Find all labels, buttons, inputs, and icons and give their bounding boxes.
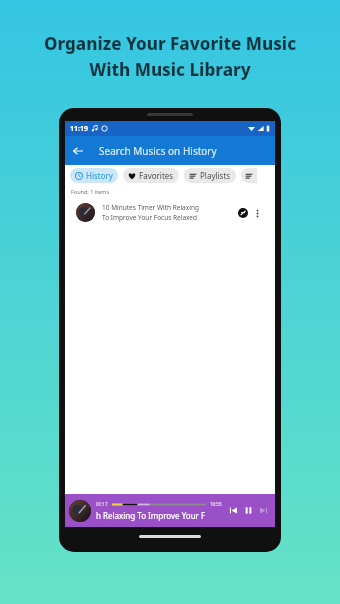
staticText: 11:19 (70, 124, 88, 134)
button[interactable]: More filters (241, 168, 257, 183)
staticText: Found: 1 items (71, 188, 110, 195)
staticText: Favorites (139, 170, 174, 181)
button[interactable]: Favorites (123, 168, 179, 183)
button[interactable]: Downloaded (236, 206, 250, 220)
button[interactable]: History (70, 168, 118, 183)
staticText: 10:55 (210, 501, 222, 507)
staticText: Organize Your Favorite Music (0, 32, 340, 55)
button[interactable]: Previous (226, 503, 241, 518)
staticText: 10 Minutes Timer With Relaxing (102, 203, 199, 212)
button[interactable]: Back (65, 138, 91, 164)
button[interactable]: More options (250, 206, 264, 220)
button[interactable]: Pause (241, 503, 256, 518)
staticText: Search Musics on History (99, 144, 217, 158)
button[interactable]: Next (256, 503, 271, 518)
staticText: With Music Library (0, 58, 340, 81)
staticText: h Relaxing To Improve Your F (96, 510, 206, 521)
staticText: 01:17 (96, 501, 108, 507)
staticText: History (86, 170, 113, 181)
button[interactable]: 01:17 (65, 494, 275, 527)
button[interactable]: 10 Minutes Timer With Relaxing (70, 197, 270, 228)
staticText: To Improve Your Focus Relaxed (102, 213, 198, 222)
button[interactable]: Playlists (184, 168, 236, 183)
staticText: Playlists (200, 170, 231, 181)
